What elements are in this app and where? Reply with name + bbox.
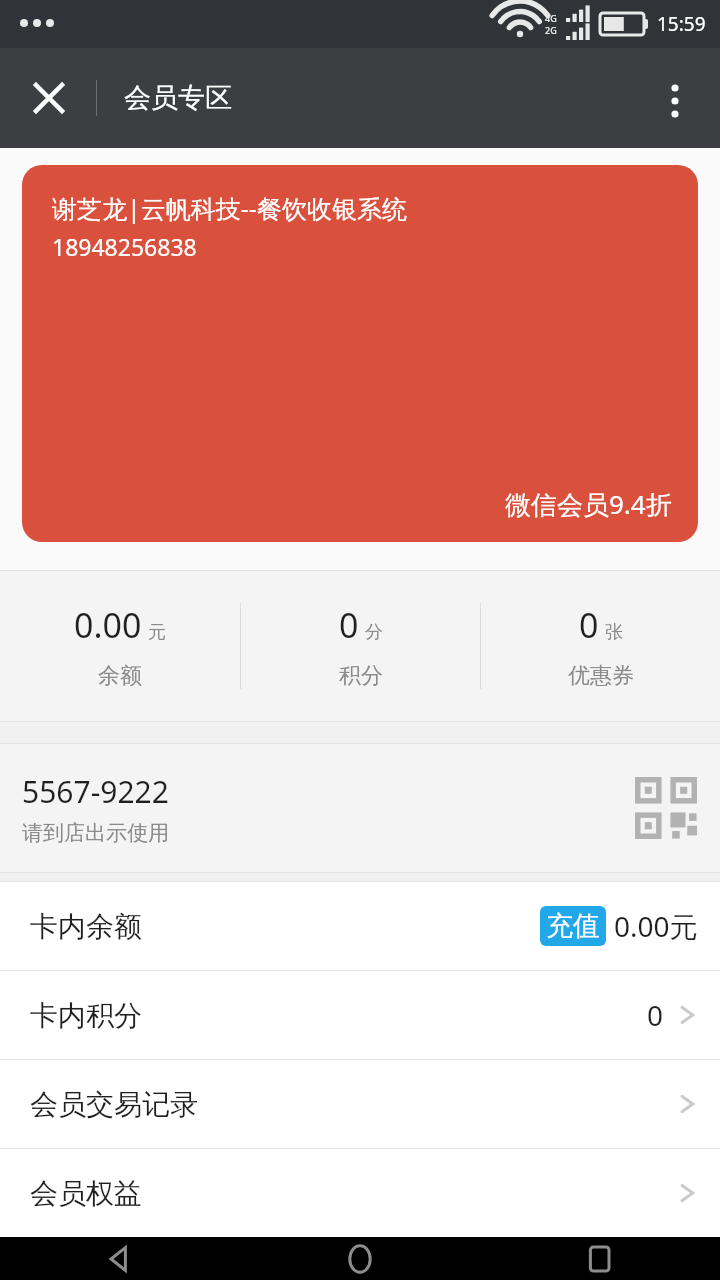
button[interactable]: 会员交易记录 bbox=[0, 1060, 720, 1148]
button[interactable]: 卡内余额 bbox=[0, 882, 720, 970]
staticText: 0 bbox=[339, 602, 359, 648]
staticText: 元 bbox=[148, 621, 166, 644]
other: QR code bbox=[634, 776, 698, 840]
staticText: 优惠券 bbox=[568, 662, 634, 690]
staticText: 会员交易记录 bbox=[30, 1087, 198, 1122]
staticText: 0.00元 bbox=[614, 907, 698, 945]
staticText: 18948256838 bbox=[52, 231, 197, 262]
staticText: 卡内余额 bbox=[30, 909, 142, 944]
button[interactable]: 0 bbox=[241, 571, 480, 721]
button[interactable]: 卡内积分 bbox=[0, 971, 720, 1059]
staticText: 15:59 bbox=[657, 11, 706, 37]
button[interactable]: Recent apps bbox=[480, 1237, 720, 1280]
staticText: 积分 bbox=[339, 662, 383, 690]
staticText: 会员专区 bbox=[124, 81, 232, 115]
staticText: 2G bbox=[545, 24, 557, 36]
staticText: 微信会员9.4折 bbox=[505, 486, 672, 522]
staticText: 余额 bbox=[98, 662, 142, 690]
staticText: 请到店出示使用 bbox=[22, 820, 169, 846]
staticText: 4G bbox=[545, 12, 557, 24]
button[interactable]: Close bbox=[14, 63, 84, 133]
button[interactable]: 充值 bbox=[540, 906, 606, 946]
staticText: 张 bbox=[605, 621, 623, 644]
staticText: 分 bbox=[365, 621, 383, 644]
staticText: 0 bbox=[579, 602, 599, 648]
staticText: 谢芝龙|云帆科技--餐饮收银系统 bbox=[52, 191, 407, 225]
staticText: 0 bbox=[647, 996, 664, 1034]
staticText: 卡内积分 bbox=[30, 998, 142, 1033]
button[interactable]: 0.00 bbox=[0, 571, 240, 721]
button[interactable]: Home bbox=[240, 1237, 480, 1280]
button[interactable]: 谢芝龙|云帆科技--餐饮收银系统 bbox=[22, 165, 698, 542]
staticText: 会员权益 bbox=[30, 1176, 142, 1211]
button[interactable]: Back bbox=[0, 1237, 240, 1280]
staticText: 充值 bbox=[546, 909, 600, 943]
button[interactable]: 0 bbox=[481, 571, 720, 721]
button[interactable]: 5567-9222 bbox=[0, 744, 720, 872]
staticText: 5567-9222 bbox=[22, 771, 169, 812]
staticText: 0.00 bbox=[74, 602, 142, 648]
button[interactable]: More options bbox=[640, 63, 710, 133]
button[interactable]: 会员权益 bbox=[0, 1149, 720, 1237]
